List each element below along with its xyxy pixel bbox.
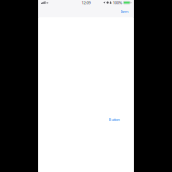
button[interactable]: Item bbox=[120, 7, 130, 15]
staticText: 100% bbox=[113, 0, 122, 5]
staticText: Button bbox=[108, 117, 119, 122]
staticText: Item bbox=[121, 9, 129, 14]
button[interactable]: Button bbox=[108, 116, 120, 123]
staticText: 12:09 bbox=[81, 0, 90, 5]
